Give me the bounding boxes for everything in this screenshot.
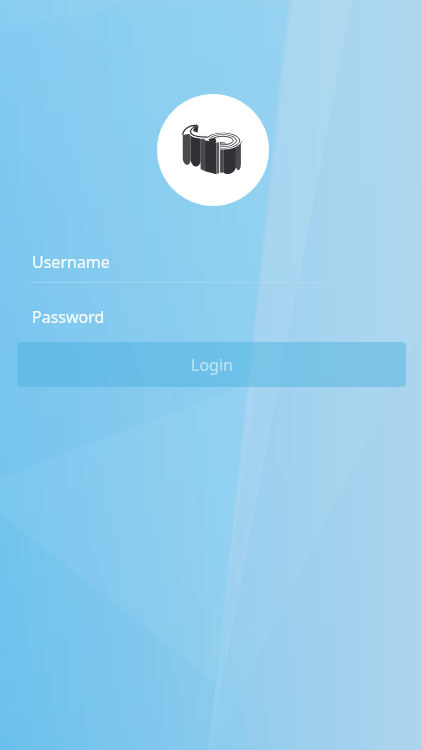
button[interactable]: Password: [0, 295, 422, 339]
staticText: Password: [32, 306, 105, 328]
button[interactable]: Username: [0, 240, 422, 284]
staticText: Username: [32, 251, 110, 273]
button[interactable]: Login: [17, 342, 406, 387]
staticText: Login: [191, 354, 233, 376]
